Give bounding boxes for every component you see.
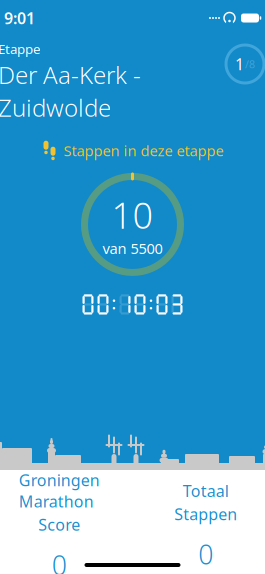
- staticText: Score: [38, 514, 80, 535]
- staticText: /8: [245, 57, 255, 71]
- staticText: Groningen Marathon: [19, 469, 100, 512]
- staticText: 1: [235, 53, 244, 75]
- button[interactable]: Totaal: [132, 470, 265, 574]
- button[interactable]: Etappe 1 van 8: [223, 42, 265, 86]
- staticText: 0: [198, 536, 213, 572]
- staticText: Stappen: [174, 503, 237, 524]
- staticText: Stappen in deze etappe: [63, 141, 223, 160]
- staticText: 10: [111, 191, 153, 239]
- staticText: Der Aa-Kerk -: [0, 59, 141, 91]
- button[interactable]: Groningen Marathon: [0, 459, 132, 574]
- staticText: Totaal: [183, 480, 229, 501]
- staticText: Etappe: [0, 40, 41, 58]
- staticText: 0: [52, 547, 67, 574]
- staticText: Zuidwolde: [0, 92, 111, 123]
- staticText: van 5500: [102, 239, 162, 258]
- staticText: 9:01: [4, 7, 35, 29]
